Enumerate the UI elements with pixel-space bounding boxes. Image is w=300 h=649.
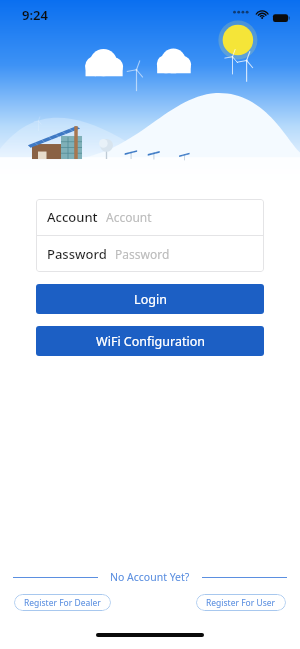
staticText: Account bbox=[47, 208, 98, 226]
button[interactable]: Register For Dealer bbox=[14, 594, 111, 611]
button[interactable]: Password bbox=[36, 236, 264, 272]
staticText: Login bbox=[134, 291, 167, 308]
staticText: Password bbox=[47, 245, 107, 263]
staticText: Register For User bbox=[206, 597, 276, 609]
staticText: Password bbox=[115, 246, 170, 262]
button[interactable]: Register For User bbox=[196, 594, 286, 611]
staticText: Account bbox=[106, 209, 152, 225]
button[interactable]: WiFi Configuration bbox=[36, 326, 264, 356]
staticText: WiFi Configuration bbox=[96, 333, 205, 350]
button[interactable]: Login bbox=[36, 284, 264, 314]
staticText: No Account Yet? bbox=[110, 570, 190, 584]
button[interactable]: Account bbox=[36, 199, 264, 235]
staticText: 9:24 bbox=[22, 6, 48, 24]
staticText: Register For Dealer bbox=[24, 597, 101, 609]
